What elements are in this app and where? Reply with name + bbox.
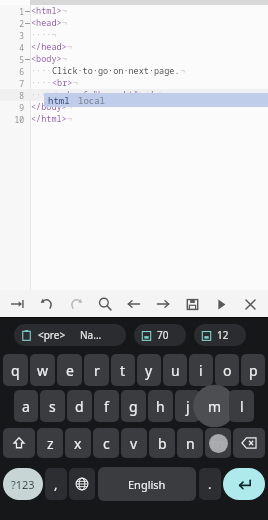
button[interactable]: <pre> <box>14 324 126 346</box>
staticText: ?123 <box>11 477 35 492</box>
staticText: Click·to·go·on·next·page. <box>52 65 180 77</box>
button[interactable]: x <box>65 428 91 458</box>
staticText: m <box>211 434 225 453</box>
button[interactable]: t <box>111 354 135 386</box>
button[interactable]: h <box>148 390 173 422</box>
button[interactable]: w <box>30 354 55 386</box>
staticText: r <box>94 361 100 380</box>
staticText: <br> <box>52 77 73 89</box>
button[interactable]: c <box>93 428 119 458</box>
button[interactable]: Search <box>93 292 117 316</box>
button[interactable]: Undo <box>35 292 59 316</box>
button[interactable]: d <box>67 390 92 422</box>
staticText: ¬ <box>165 89 171 101</box>
staticText: <pre> <box>38 328 66 342</box>
button[interactable]: y <box>137 354 161 386</box>
staticText: h <box>156 397 165 416</box>
staticText: </head> <box>31 41 67 53</box>
button[interactable]: e <box>57 354 82 386</box>
staticText: ····¬ <box>31 29 57 41</box>
button[interactable]: Redo <box>64 292 88 316</box>
staticText: e <box>66 361 74 380</box>
button[interactable]: ?123 <box>3 468 43 500</box>
button[interactable]: 12 <box>194 324 246 346</box>
button[interactable]: u <box>163 354 187 386</box>
staticText: ···· <box>31 89 52 101</box>
button[interactable]: b <box>149 428 175 458</box>
staticText: ¬ <box>67 113 73 125</box>
staticText: t <box>120 361 126 380</box>
staticText: b <box>158 434 167 453</box>
staticText: f <box>104 397 109 416</box>
button[interactable]: p <box>241 354 265 386</box>
staticText: v <box>130 434 138 453</box>
button[interactable]: z <box>37 428 63 458</box>
staticText: 70 <box>157 328 169 342</box>
staticText: u <box>171 361 180 380</box>
button[interactable]: n <box>177 428 203 458</box>
button[interactable]: v <box>121 428 147 458</box>
staticText: </body> <box>31 101 67 113</box>
staticText: z <box>47 434 54 453</box>
staticText: c <box>103 434 110 453</box>
button[interactable]: l <box>229 390 254 422</box>
staticText: ···· <box>31 65 52 77</box>
button[interactable]: Close <box>238 292 262 316</box>
staticText: d <box>75 397 84 416</box>
staticText: a <box>22 397 30 416</box>
button[interactable]: Backspace <box>233 428 265 458</box>
button[interactable]: a <box>14 390 38 422</box>
staticText: i <box>199 361 203 380</box>
button[interactable]: 70 <box>134 324 186 346</box>
staticText: 5 <box>19 54 24 65</box>
staticText: 12 <box>217 328 229 342</box>
staticText: ¬ <box>62 5 68 17</box>
staticText: n <box>186 434 195 453</box>
staticText: . <box>208 475 212 493</box>
button[interactable]: f <box>94 390 119 422</box>
staticText: ¬ <box>67 101 73 113</box>
button[interactable]: Shift <box>3 428 35 458</box>
staticText: ···· <box>31 77 52 89</box>
staticText: 1 <box>19 6 24 17</box>
button[interactable]: g <box>121 390 146 422</box>
staticText: 10 <box>14 114 24 125</box>
button[interactable]: Comma <box>45 468 67 500</box>
button[interactable]: English <box>98 467 196 501</box>
staticText: html <box>48 94 70 106</box>
staticText: x <box>74 434 82 453</box>
staticText: ¬ <box>180 65 186 77</box>
button[interactable]: s <box>40 390 65 422</box>
button[interactable]: Forward <box>151 292 175 316</box>
staticText: <body> <box>31 53 62 65</box>
button[interactable]: Enter <box>223 468 265 500</box>
staticText: j <box>186 397 190 416</box>
staticText: <html> <box>31 5 62 17</box>
staticText: 9 <box>19 102 24 113</box>
button[interactable]: m <box>205 428 231 458</box>
staticText: g <box>129 397 138 416</box>
staticText: ¬ <box>62 53 68 65</box>
button[interactable]: i <box>189 354 213 386</box>
staticText: 3 <box>19 30 24 41</box>
button[interactable]: m <box>202 390 227 422</box>
button[interactable]: Run <box>209 292 233 316</box>
button[interactable]: q <box>3 354 28 386</box>
button[interactable]: o <box>215 354 239 386</box>
button[interactable]: Back <box>122 292 146 316</box>
button[interactable]: Period <box>199 468 221 500</box>
staticText: ¬ <box>67 41 73 53</box>
staticText: Na... <box>80 328 102 342</box>
staticText: ¬ <box>62 17 68 29</box>
staticText: ¬ <box>73 77 79 89</box>
staticText: <a href="home.ht"></a> <box>52 89 165 101</box>
button[interactable]: r <box>84 354 109 386</box>
button[interactable]: j <box>175 390 200 422</box>
staticText: y <box>145 361 153 380</box>
button[interactable]: Indent <box>6 292 30 316</box>
button[interactable]: Change language <box>69 468 95 500</box>
staticText: q <box>11 361 20 380</box>
button[interactable]: Save <box>180 292 204 316</box>
staticText: m <box>208 397 222 416</box>
staticText: s <box>49 397 56 416</box>
